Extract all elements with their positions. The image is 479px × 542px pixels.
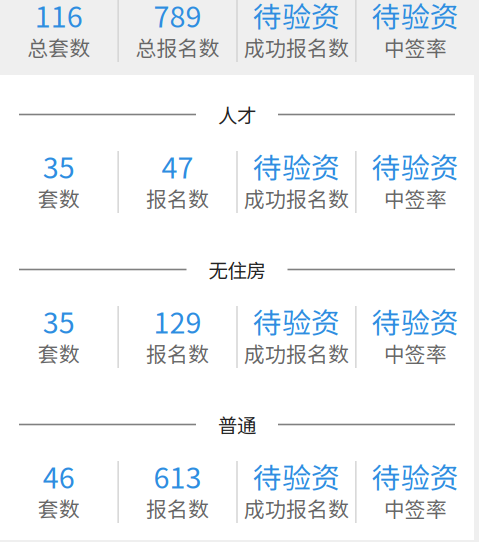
staticText: 35 [43, 300, 75, 342]
staticText: 普通 [218, 410, 256, 439]
staticText: 报名数 [146, 338, 209, 368]
staticText: 待验资 [253, 145, 340, 187]
staticText: 成功报名数 [244, 493, 349, 523]
staticText: 成功报名数 [244, 338, 349, 368]
staticText: 129 [154, 300, 202, 342]
staticText: 成功报名数 [244, 32, 349, 62]
button[interactable]: 47 [119, 151, 236, 209]
staticText: 人才 [218, 100, 256, 129]
staticText: 中签率 [384, 493, 447, 523]
button[interactable]: 待验资 [238, 306, 355, 364]
button[interactable]: 116 [0, 0, 117, 58]
button[interactable]: 789 [119, 0, 236, 58]
button[interactable]: 46 [0, 461, 117, 519]
button[interactable]: 待验资 [357, 151, 474, 209]
staticText: 待验资 [372, 455, 459, 497]
staticText: 报名数 [146, 183, 209, 213]
staticText: 中签率 [384, 32, 447, 62]
button[interactable]: 待验资 [357, 0, 474, 58]
button[interactable]: 待验资 [238, 0, 355, 58]
staticText: 中签率 [384, 338, 447, 368]
staticText: 总套数 [27, 32, 90, 62]
staticText: 46 [43, 455, 75, 497]
staticText: 总报名数 [136, 32, 220, 62]
button[interactable]: 35 [0, 306, 117, 364]
staticText: 报名数 [146, 493, 209, 523]
staticText: 待验资 [372, 145, 459, 187]
button[interactable]: 35 [0, 151, 117, 209]
staticText: 待验资 [253, 0, 340, 36]
staticText: 613 [154, 455, 202, 497]
button[interactable]: 待验资 [357, 461, 474, 519]
staticText: 789 [154, 0, 202, 36]
button[interactable]: 待验资 [238, 461, 355, 519]
staticText: 116 [35, 0, 83, 36]
staticText: 无住房 [208, 255, 265, 284]
staticText: 待验资 [372, 0, 459, 36]
button[interactable]: 613 [119, 461, 236, 519]
staticText: 套数 [38, 183, 80, 213]
staticText: 待验资 [372, 300, 459, 342]
staticText: 待验资 [253, 455, 340, 497]
button[interactable]: 待验资 [238, 151, 355, 209]
staticText: 中签率 [384, 183, 447, 213]
staticText: 成功报名数 [244, 183, 349, 213]
button[interactable]: 129 [119, 306, 236, 364]
staticText: 待验资 [253, 300, 340, 342]
staticText: 47 [162, 145, 194, 187]
staticText: 套数 [38, 338, 80, 368]
staticText: 套数 [38, 493, 80, 523]
staticText: 35 [43, 145, 75, 187]
button[interactable]: 待验资 [357, 306, 474, 364]
